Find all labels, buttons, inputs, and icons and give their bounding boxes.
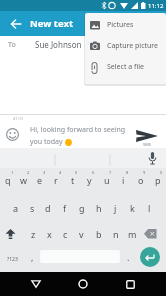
staticText: a xyxy=(13,202,19,214)
staticText: m xyxy=(128,228,137,240)
button[interactable]: x xyxy=(41,220,57,246)
staticText: 1 xyxy=(11,170,14,175)
staticText: 5 xyxy=(75,170,78,175)
staticText: p xyxy=(155,174,161,186)
button[interactable]: b xyxy=(90,220,107,246)
button[interactable]: . xyxy=(120,246,136,272)
staticText: 2 xyxy=(27,170,30,175)
staticText: e xyxy=(37,174,43,186)
staticText: y xyxy=(87,174,92,186)
staticText: x xyxy=(47,228,52,240)
button[interactable] xyxy=(5,127,19,141)
button[interactable]: , xyxy=(24,246,40,272)
staticText: c xyxy=(63,228,68,240)
button[interactable]: Select a file xyxy=(85,56,166,77)
staticText: q xyxy=(5,174,11,186)
button[interactable] xyxy=(136,246,166,272)
staticText: b xyxy=(96,228,102,240)
button[interactable] xyxy=(28,276,44,292)
staticText: Sue Johnson xyxy=(35,39,82,50)
staticText: 41 (1) xyxy=(13,116,24,121)
button[interactable]: 5 xyxy=(64,168,81,194)
button[interactable]: 9 xyxy=(132,168,149,194)
button[interactable]: c xyxy=(57,220,73,246)
staticText: 7 xyxy=(109,170,112,175)
button[interactable]: k xyxy=(124,194,141,220)
staticText: d xyxy=(45,202,51,214)
button[interactable]: f xyxy=(56,194,73,220)
button[interactable]: Pictures xyxy=(85,14,166,35)
button[interactable]: 2 xyxy=(16,168,32,194)
staticText: To xyxy=(8,40,16,50)
staticText: SMS xyxy=(143,142,152,147)
button[interactable]: n xyxy=(107,220,124,246)
staticText: New text xyxy=(30,17,74,30)
button[interactable]: a xyxy=(8,194,24,220)
staticText: 0 xyxy=(160,170,163,175)
button[interactable]: 1 xyxy=(0,168,16,194)
staticText: w xyxy=(20,174,28,186)
staticText: z xyxy=(31,228,36,240)
staticText: , xyxy=(31,251,34,263)
staticText: 3 xyxy=(43,170,46,175)
button[interactable]: ?123 xyxy=(0,246,24,272)
staticText: f xyxy=(63,202,67,214)
staticText: h xyxy=(96,202,102,214)
staticText: l xyxy=(148,202,151,214)
staticText: 11:12 xyxy=(148,2,164,10)
staticText: 9 xyxy=(143,170,146,175)
button[interactable]: d xyxy=(40,194,56,220)
button[interactable] xyxy=(0,220,25,246)
staticText: t xyxy=(71,174,75,186)
button[interactable] xyxy=(141,220,166,246)
button[interactable]: 0 xyxy=(149,168,166,194)
staticText: o xyxy=(138,174,144,186)
staticText: g xyxy=(79,202,85,214)
staticText: Capture picture xyxy=(107,41,159,51)
button[interactable] xyxy=(0,11,30,36)
button[interactable]: 3 xyxy=(32,168,48,194)
staticText: u xyxy=(104,174,110,186)
button[interactable] xyxy=(122,276,138,292)
button[interactable]: Capture picture xyxy=(85,35,166,56)
button[interactable]: SMS xyxy=(136,130,158,147)
button[interactable]: l xyxy=(141,194,158,220)
button[interactable]: v xyxy=(73,220,90,246)
button[interactable]: j xyxy=(107,194,124,220)
staticText: Pictures xyxy=(107,20,134,30)
button[interactable]: h xyxy=(90,194,107,220)
staticText: Hi, looking forward to seeing xyxy=(30,125,126,135)
staticText: 6 xyxy=(92,170,95,175)
staticText: r xyxy=(54,174,58,186)
staticText: . xyxy=(127,251,130,263)
button[interactable] xyxy=(75,276,91,292)
staticText: s xyxy=(30,202,35,214)
staticText: i xyxy=(122,174,125,186)
button[interactable]: z xyxy=(25,220,41,246)
staticText: j xyxy=(114,202,117,214)
staticText: you today xyxy=(30,137,65,147)
button[interactable]: m xyxy=(124,220,141,246)
staticText: k xyxy=(130,202,135,214)
button[interactable]: 6 xyxy=(81,168,98,194)
staticText: ?123 xyxy=(7,256,18,263)
button[interactable]: 8 xyxy=(115,168,132,194)
button[interactable]: s xyxy=(24,194,40,220)
staticText: 8 xyxy=(126,170,129,175)
staticText: n xyxy=(113,228,119,240)
button[interactable]: 4 xyxy=(48,168,64,194)
staticText: Select a file xyxy=(107,62,144,72)
button[interactable]: 7 xyxy=(98,168,115,194)
button[interactable]: g xyxy=(73,194,90,220)
staticText: 4 xyxy=(59,170,62,175)
button[interactable]: To xyxy=(0,36,166,53)
staticText: v xyxy=(79,228,84,240)
